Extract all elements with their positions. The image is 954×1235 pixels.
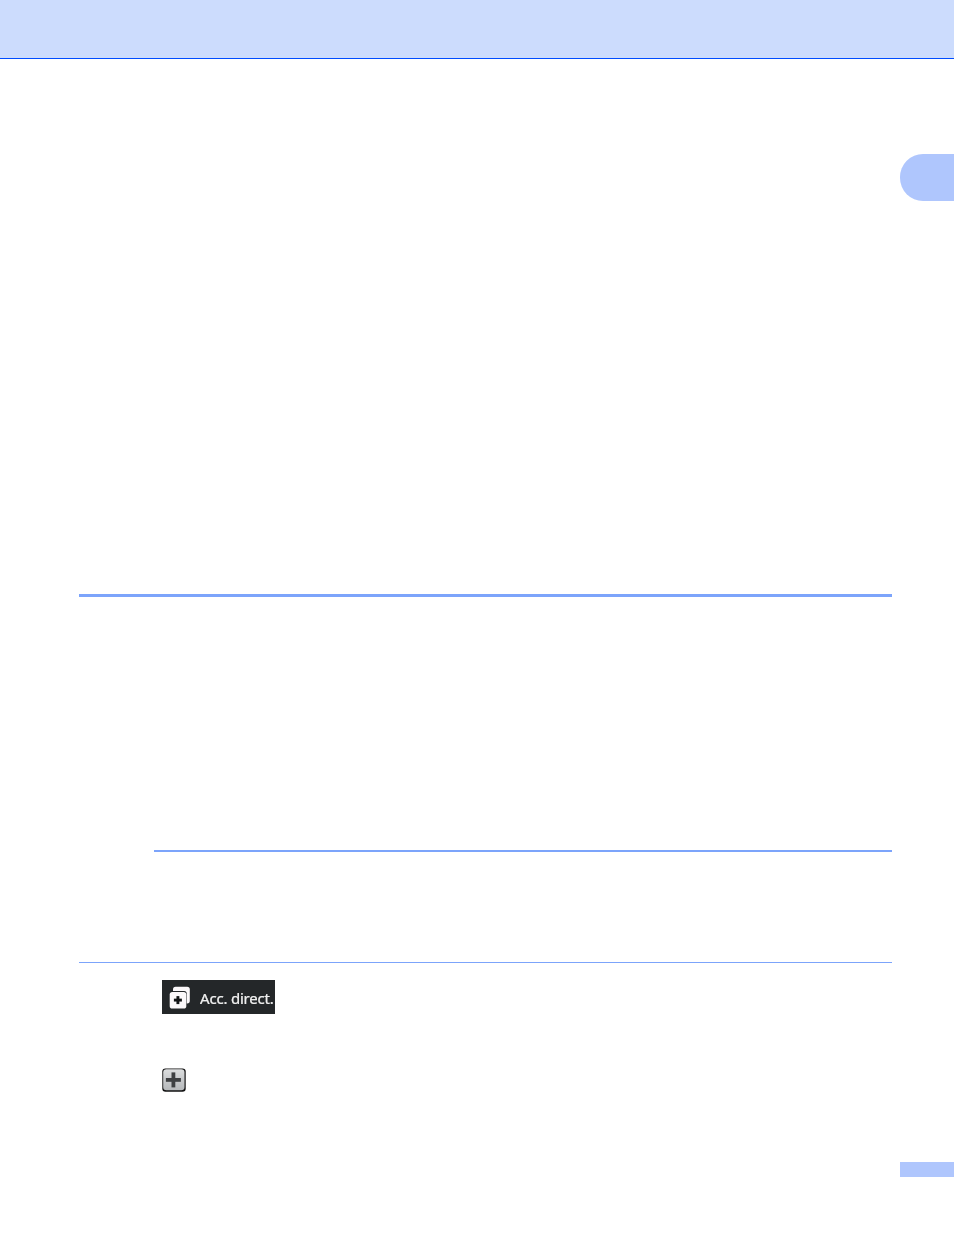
button[interactable]: Acc. direct. <box>162 980 275 1014</box>
staticText: Acc. direct. <box>200 988 274 1008</box>
button[interactable]: Add <box>162 1068 186 1092</box>
button[interactable]: Chapter tab <box>900 154 954 201</box>
